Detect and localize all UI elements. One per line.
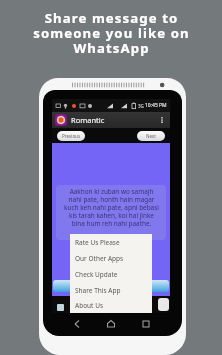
staticText: About Us [75,301,104,310]
staticText: Rate Us Please [75,238,120,247]
staticText: 10:45 PM [145,102,167,109]
staticText: Share This App [75,286,121,295]
button[interactable]: More options [156,114,168,126]
button[interactable]: Share [149,280,169,292]
button[interactable]: About Us [70,298,152,313]
staticText: 3G [138,103,144,109]
button[interactable]: Ad [57,304,64,311]
button[interactable]: Next [137,131,165,141]
staticText: Share message to someone you like on Wha… [33,9,190,57]
button[interactable]: Share This App [70,282,152,298]
staticText: Next [146,133,156,139]
staticText: Previous [62,133,81,139]
button[interactable]: Recents [136,314,156,334]
staticText: Romantic [71,115,105,125]
button[interactable]: Copy [53,280,73,292]
staticText: Aakhon ki zuban wo samajh nahi pate, hon… [64,187,159,228]
staticText: Our Other Apps [75,254,124,263]
button[interactable]: Check Update [70,266,152,282]
staticText: Check Update [75,270,118,279]
button[interactable]: Back [67,314,87,334]
button[interactable]: Rate Us Please [70,234,152,250]
button[interactable]: Ad [158,298,169,311]
button[interactable]: Home [101,314,121,334]
button[interactable]: Our Other Apps [70,250,152,266]
button[interactable]: Previous [57,131,85,141]
